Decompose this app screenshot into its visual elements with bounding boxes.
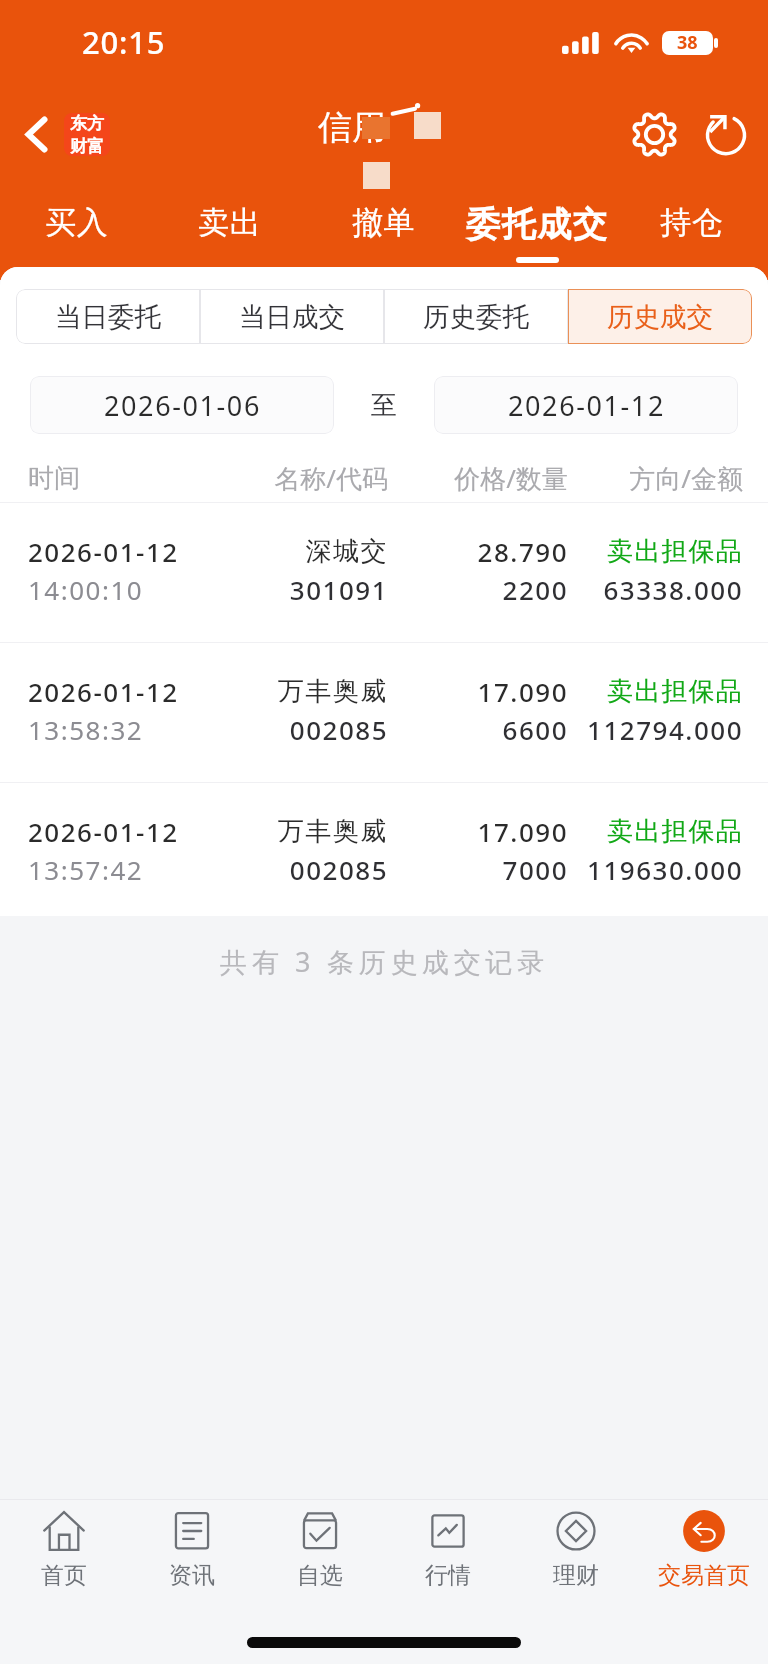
staticText: 当日成交 bbox=[239, 300, 345, 333]
staticText: 2026-01-06 bbox=[104, 387, 261, 424]
staticText: 深城交 bbox=[208, 535, 388, 568]
staticText: 38 bbox=[677, 30, 698, 55]
staticText: 卖出担保品 bbox=[568, 815, 743, 848]
button[interactable]: 当日成交 bbox=[200, 289, 384, 344]
staticText: 委托成交 bbox=[466, 203, 609, 246]
staticText: 万丰奥威 bbox=[208, 815, 388, 848]
staticText: 7000 bbox=[388, 852, 568, 887]
staticText: 当日委托 bbox=[55, 300, 161, 333]
staticText: 历史委托 bbox=[423, 300, 529, 333]
staticText: 至 bbox=[371, 389, 397, 422]
staticText: 交易首页 bbox=[658, 1561, 750, 1590]
staticText: 行情 bbox=[425, 1561, 471, 1590]
staticText: 14:00:10 bbox=[28, 572, 208, 607]
staticText: 资讯 bbox=[169, 1561, 215, 1590]
staticText: 119630.000 bbox=[568, 852, 743, 887]
staticText: 2026-01-12 bbox=[508, 387, 665, 424]
staticText: 002085 bbox=[208, 712, 388, 747]
button[interactable]: 行情 bbox=[384, 1500, 512, 1619]
staticText: 112794.000 bbox=[568, 712, 743, 747]
button[interactable]: 持仓 bbox=[614, 180, 768, 267]
staticText: 2200 bbox=[388, 572, 568, 607]
button[interactable]: 委托成交 bbox=[460, 180, 614, 267]
staticText: 时间 bbox=[28, 462, 208, 495]
staticText: 东方 bbox=[70, 113, 104, 134]
button[interactable]: East Money logo bbox=[64, 113, 110, 156]
staticText: 买入 bbox=[45, 203, 108, 242]
staticText: 自选 bbox=[297, 1561, 343, 1590]
button[interactable]: 首页 bbox=[0, 1500, 128, 1619]
button[interactable]: 2026-01-12 bbox=[0, 783, 768, 916]
staticText: 20:15 bbox=[82, 21, 166, 63]
staticText: 撤单 bbox=[352, 203, 415, 242]
staticText: 17.090 bbox=[388, 814, 568, 849]
staticText: 历史成交 bbox=[607, 300, 713, 333]
staticText: 信用 bbox=[318, 106, 386, 149]
button[interactable]: Settings bbox=[621, 101, 687, 167]
staticText: 13:58:32 bbox=[28, 712, 208, 747]
button[interactable]: Back bbox=[8, 102, 64, 166]
staticText: 002085 bbox=[208, 852, 388, 887]
staticText: 万丰奥威 bbox=[208, 675, 388, 708]
staticText: 名称/代码 bbox=[208, 460, 388, 496]
button[interactable]: 2026-01-12 bbox=[0, 503, 768, 642]
staticText: 持仓 bbox=[660, 203, 723, 242]
button[interactable]: 卖出 bbox=[153, 180, 306, 267]
button[interactable]: 撤单 bbox=[306, 180, 460, 267]
staticText: 28.790 bbox=[388, 534, 568, 569]
button[interactable]: 当日委托 bbox=[16, 289, 200, 344]
button[interactable]: 交易首页 bbox=[640, 1500, 768, 1619]
button[interactable]: 2026-01-12 bbox=[0, 643, 768, 782]
staticText: 共有 3 条历史成交记录 bbox=[220, 943, 549, 980]
staticText: 卖出担保品 bbox=[568, 535, 743, 568]
button[interactable]: 资讯 bbox=[128, 1500, 256, 1619]
staticText: 价格/数量 bbox=[388, 460, 568, 496]
staticText: 理财 bbox=[553, 1561, 599, 1590]
staticText: 13:57:42 bbox=[28, 852, 208, 887]
button[interactable]: 理财 bbox=[512, 1500, 640, 1619]
button[interactable]: Refresh bbox=[693, 101, 759, 167]
button[interactable]: 买入 bbox=[0, 180, 153, 267]
staticText: 6600 bbox=[388, 712, 568, 747]
staticText: 卖出担保品 bbox=[568, 675, 743, 708]
staticText: 63338.000 bbox=[568, 572, 743, 607]
staticText: 17.090 bbox=[388, 674, 568, 709]
staticText: 卖出 bbox=[198, 203, 261, 242]
button[interactable]: 2026-01-06 bbox=[30, 376, 334, 434]
staticText: 方向/金额 bbox=[568, 460, 743, 496]
button[interactable]: 历史委托 bbox=[384, 289, 568, 344]
button[interactable]: 历史成交 bbox=[568, 289, 752, 344]
staticText: 2026-01-12 bbox=[28, 534, 208, 569]
staticText: 首页 bbox=[41, 1561, 87, 1590]
staticText: 2026-01-12 bbox=[28, 674, 208, 709]
staticText: 301091 bbox=[208, 572, 388, 607]
button[interactable]: 2026-01-12 bbox=[434, 376, 738, 434]
staticText: 2026-01-12 bbox=[28, 814, 208, 849]
staticText: 财富 bbox=[70, 136, 104, 156]
button[interactable]: 自选 bbox=[256, 1500, 384, 1619]
